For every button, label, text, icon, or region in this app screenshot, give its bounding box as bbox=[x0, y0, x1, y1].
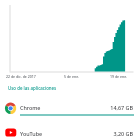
staticText: 5 de ene. bbox=[64, 74, 80, 79]
staticText: 3,20 GB bbox=[100, 130, 133, 140]
staticText: Chrome bbox=[20, 104, 41, 111]
staticText: 22 de dic. de 2017 bbox=[6, 74, 36, 79]
staticText: YouTube bbox=[20, 130, 43, 137]
staticText: 19 de ene. bbox=[110, 74, 128, 79]
staticText: Uso de las aplicaciones bbox=[8, 85, 57, 91]
button[interactable]: Chrome bbox=[0, 100, 140, 140]
staticText: 14,67 GB bbox=[100, 104, 133, 140]
button[interactable]: YouTube bbox=[0, 126, 140, 140]
